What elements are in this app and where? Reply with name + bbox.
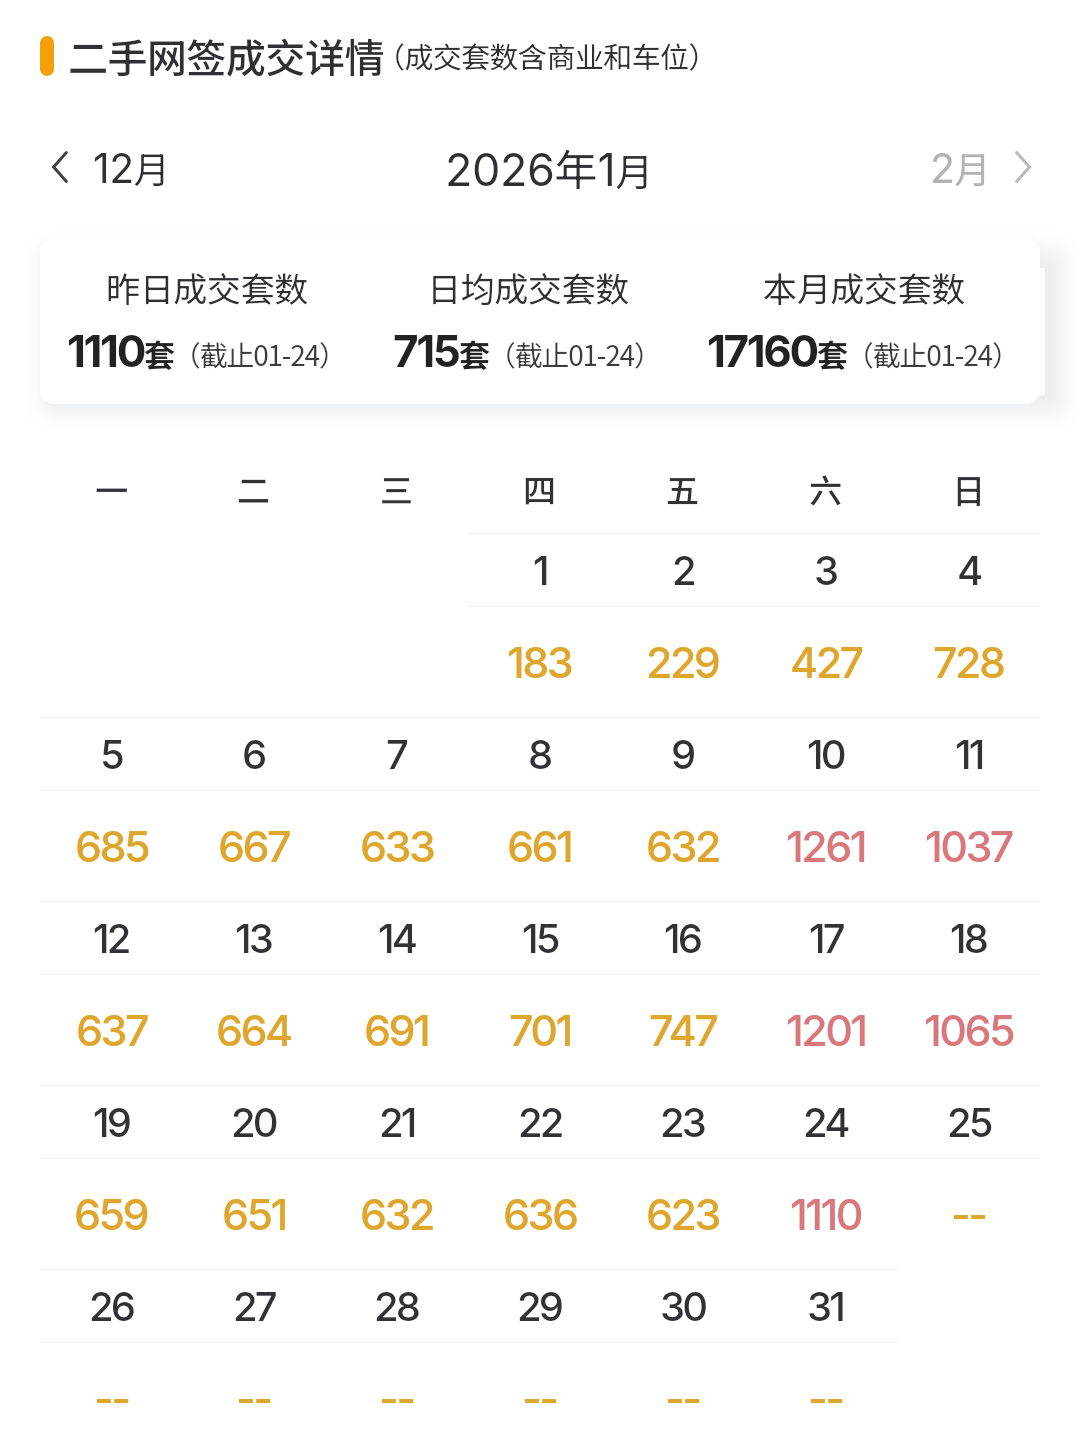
button[interactable]: 27 <box>182 1270 325 1342</box>
button[interactable]: 24 <box>754 1086 897 1158</box>
button[interactable]: 17 <box>754 902 897 974</box>
button[interactable]: 10 <box>754 718 897 790</box>
button[interactable]: 1037 <box>897 791 1040 901</box>
button[interactable]: -- <box>611 1343 754 1445</box>
button[interactable]: 5 <box>40 718 182 790</box>
button[interactable]: 31 <box>754 1270 897 1342</box>
button[interactable]: 30 <box>611 1270 754 1342</box>
button[interactable]: -- <box>897 1159 1040 1269</box>
button[interactable]: 659 <box>40 1159 182 1269</box>
button[interactable]: 229 <box>611 607 754 717</box>
staticText: 1110 <box>790 1188 861 1240</box>
button[interactable]: 13 <box>182 902 325 974</box>
staticText: 685 <box>75 820 148 872</box>
button[interactable]: 747 <box>611 975 754 1085</box>
button[interactable]: 9 <box>611 718 754 790</box>
staticText: 二手网签成交详情 <box>68 27 385 85</box>
staticText: 2月 <box>930 141 991 193</box>
staticText: -- <box>522 1372 557 1424</box>
button[interactable]: 637 <box>40 975 182 1085</box>
button[interactable]: 661 <box>468 791 611 901</box>
button[interactable]: 19 <box>40 1086 182 1158</box>
button[interactable]: 28 <box>325 1270 468 1342</box>
button[interactable]: 691 <box>325 975 468 1085</box>
button[interactable]: 6 <box>182 718 325 790</box>
staticText: 6 <box>242 730 265 778</box>
staticText: 六 <box>809 465 842 513</box>
button[interactable]: 651 <box>182 1159 325 1269</box>
staticText: 632 <box>360 1188 433 1240</box>
staticText: 427 <box>790 636 862 688</box>
button[interactable]: 1261 <box>754 791 897 901</box>
button[interactable]: 3 <box>754 534 897 606</box>
staticText: 701 <box>509 1004 571 1056</box>
staticText: 23 <box>660 1098 705 1146</box>
button[interactable]: 下一个月 2月 <box>906 131 1080 203</box>
button[interactable]: 14 <box>325 902 468 974</box>
button[interactable]: 20 <box>182 1086 325 1158</box>
button[interactable]: 664 <box>182 975 325 1085</box>
button[interactable]: -- <box>182 1343 325 1445</box>
button[interactable]: 1065 <box>897 975 1040 1085</box>
staticText: 4 <box>957 546 981 594</box>
button[interactable]: 29 <box>468 1270 611 1342</box>
staticText: 15 <box>522 914 558 962</box>
button[interactable]: 昨日成交套数 <box>40 238 1040 404</box>
button[interactable]: 2 <box>611 534 754 606</box>
button[interactable]: 21 <box>325 1086 468 1158</box>
button[interactable]: -- <box>40 1343 182 1445</box>
staticText: 13 <box>235 914 272 962</box>
staticText: 5 <box>100 730 122 778</box>
button[interactable]: 667 <box>182 791 325 901</box>
staticText: 17 <box>809 914 843 962</box>
button[interactable]: 26 <box>40 1270 182 1342</box>
button[interactable]: 15 <box>468 902 611 974</box>
staticText: 套 <box>144 331 175 376</box>
button[interactable]: 12 <box>40 902 182 974</box>
button[interactable]: 623 <box>611 1159 754 1269</box>
staticText: 26 <box>89 1282 134 1330</box>
button[interactable]: 25 <box>897 1086 1040 1158</box>
staticText: 1110 <box>67 324 144 377</box>
staticText: 661 <box>507 820 572 872</box>
button[interactable]: -- <box>468 1343 611 1445</box>
button[interactable]: 7 <box>325 718 468 790</box>
button[interactable]: 183 <box>468 607 611 717</box>
staticText: （截止01-24） <box>173 334 346 375</box>
button[interactable]: 1201 <box>754 975 897 1085</box>
button[interactable]: -- <box>325 1343 468 1445</box>
staticText: 651 <box>222 1188 286 1240</box>
button[interactable]: 18 <box>897 902 1040 974</box>
button[interactable]: 8 <box>468 718 611 790</box>
staticText: 本月成交套数 <box>763 263 965 312</box>
button[interactable]: 633 <box>325 791 468 901</box>
button[interactable]: 1 <box>468 534 611 606</box>
button[interactable]: -- <box>754 1343 897 1445</box>
button[interactable]: 632 <box>611 791 754 901</box>
button[interactable]: 427 <box>754 607 897 717</box>
button[interactable]: 22 <box>468 1086 611 1158</box>
staticText: 667 <box>218 820 289 872</box>
button[interactable]: 11 <box>897 718 1040 790</box>
button[interactable]: 4 <box>897 534 1040 606</box>
button[interactable]: 685 <box>40 791 182 901</box>
button[interactable]: 上一个月 12月 <box>0 131 194 203</box>
staticText: 664 <box>216 1004 291 1056</box>
button[interactable]: 728 <box>897 607 1040 717</box>
button[interactable]: 1110 <box>754 1159 897 1269</box>
staticText: 747 <box>649 1004 717 1056</box>
button[interactable]: 632 <box>325 1159 468 1269</box>
button[interactable]: 23 <box>611 1086 754 1158</box>
button[interactable]: 636 <box>468 1159 611 1269</box>
button[interactable]: 16 <box>611 902 754 974</box>
button[interactable]: 701 <box>468 975 611 1085</box>
staticText: 31 <box>807 1282 844 1330</box>
